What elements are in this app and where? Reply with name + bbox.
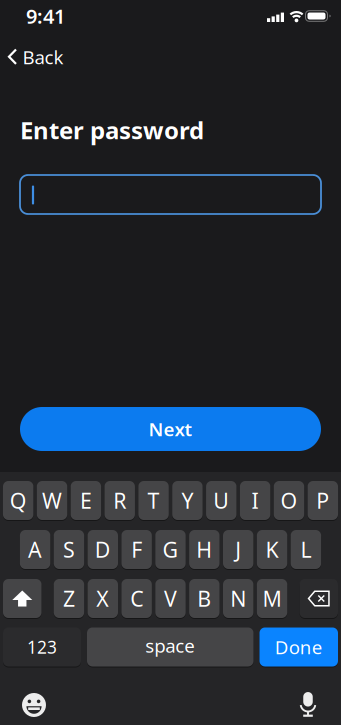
staticText: A bbox=[28, 535, 42, 564]
button[interactable]: Password bbox=[20, 175, 321, 214]
button[interactable]: P bbox=[308, 481, 338, 520]
button[interactable]: 123 bbox=[3, 627, 81, 666]
button[interactable]: F bbox=[121, 530, 152, 569]
staticText: W bbox=[42, 486, 62, 515]
button[interactable]: Next bbox=[20, 407, 321, 451]
staticText: Q bbox=[10, 486, 27, 515]
staticText: Next bbox=[148, 417, 192, 441]
button[interactable]: Dictation bbox=[292, 689, 324, 721]
button[interactable]: X bbox=[88, 579, 118, 618]
button[interactable]: I bbox=[240, 481, 270, 520]
staticText: I bbox=[252, 486, 259, 515]
staticText: L bbox=[300, 535, 311, 564]
staticText: S bbox=[63, 535, 75, 564]
button[interactable]: W bbox=[37, 481, 67, 520]
staticText: V bbox=[164, 584, 177, 613]
button[interactable]: S bbox=[54, 530, 84, 569]
button[interactable]: Y bbox=[172, 481, 203, 520]
button[interactable]: O bbox=[274, 481, 304, 520]
staticText: 9:41 bbox=[26, 3, 65, 29]
staticText: E bbox=[80, 486, 92, 515]
button[interactable]: L bbox=[291, 530, 321, 569]
staticText: C bbox=[130, 584, 143, 613]
button[interactable]: A bbox=[20, 530, 50, 569]
button[interactable]: Shift bbox=[3, 579, 41, 618]
staticText: U bbox=[213, 486, 229, 515]
button[interactable]: Z bbox=[54, 579, 84, 618]
staticText: G bbox=[162, 535, 178, 564]
staticText: D bbox=[95, 535, 111, 564]
button[interactable]: H bbox=[189, 530, 219, 569]
staticText: B bbox=[197, 584, 211, 613]
staticText: J bbox=[235, 535, 241, 564]
staticText: K bbox=[265, 535, 278, 564]
staticText: space bbox=[145, 633, 195, 658]
button[interactable]: R bbox=[104, 481, 135, 520]
button[interactable]: J bbox=[223, 530, 253, 569]
button[interactable]: space bbox=[87, 627, 253, 666]
staticText: P bbox=[316, 486, 329, 515]
button[interactable]: Q bbox=[3, 481, 33, 520]
button[interactable]: C bbox=[121, 579, 152, 618]
button[interactable]: K bbox=[257, 530, 287, 569]
staticText: R bbox=[113, 486, 126, 515]
staticText: T bbox=[148, 486, 160, 515]
button[interactable]: U bbox=[206, 481, 236, 520]
staticText: N bbox=[230, 584, 246, 613]
staticText: F bbox=[131, 535, 142, 564]
button[interactable]: Emoji bbox=[16, 689, 52, 721]
staticText: X bbox=[96, 584, 109, 613]
button[interactable]: Back bbox=[0, 42, 71, 72]
button[interactable]: Delete bbox=[299, 579, 338, 618]
button[interactable]: E bbox=[71, 481, 101, 520]
button[interactable]: D bbox=[88, 530, 118, 569]
staticText: Back bbox=[22, 45, 63, 69]
button[interactable]: B bbox=[189, 579, 220, 618]
button[interactable]: V bbox=[155, 579, 186, 618]
button[interactable]: T bbox=[138, 481, 169, 520]
staticText: H bbox=[196, 535, 212, 564]
staticText: Done bbox=[275, 635, 323, 659]
staticText: 123 bbox=[27, 635, 57, 658]
button[interactable]: M bbox=[257, 579, 287, 618]
staticText: Z bbox=[63, 584, 75, 613]
button[interactable]: Done bbox=[259, 627, 338, 666]
staticText: Enter password bbox=[20, 114, 204, 146]
staticText: O bbox=[280, 486, 297, 515]
staticText: Y bbox=[181, 486, 193, 515]
button[interactable]: N bbox=[223, 579, 253, 618]
staticText: M bbox=[263, 584, 282, 613]
button[interactable]: G bbox=[155, 530, 186, 569]
